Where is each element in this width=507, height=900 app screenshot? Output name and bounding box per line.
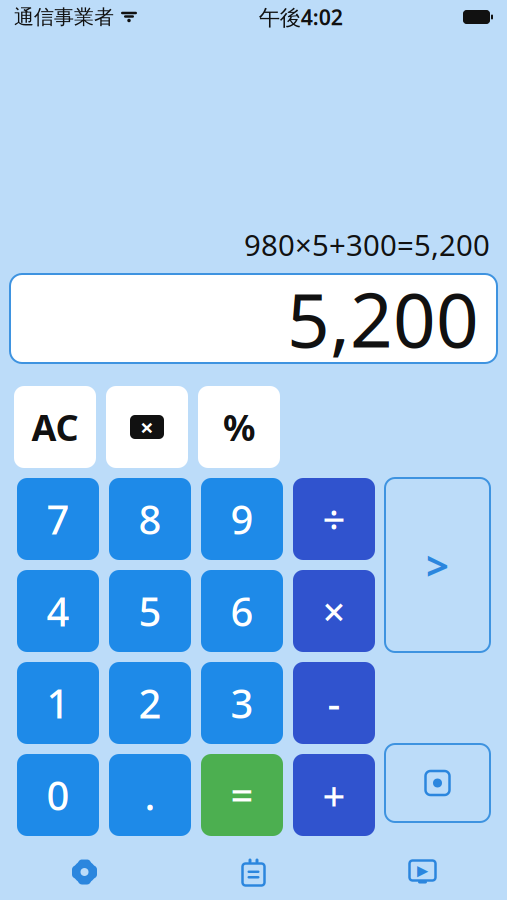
staticText: × <box>322 584 345 637</box>
staticText: ▶ <box>417 862 428 879</box>
button[interactable]: Videos <box>338 844 507 900</box>
staticText: 2 <box>138 676 161 729</box>
button[interactable]: 9 <box>201 478 283 560</box>
staticText: × <box>140 411 154 443</box>
button[interactable]: ÷ <box>293 478 375 560</box>
staticText: 980×5+300=5,200 <box>244 225 490 264</box>
button[interactable]: × <box>293 570 375 652</box>
staticText: - <box>327 676 340 729</box>
button[interactable]: 7 <box>17 478 99 560</box>
staticText: + <box>322 768 345 821</box>
button[interactable]: 0 <box>17 754 99 836</box>
button[interactable]: 4 <box>17 570 99 652</box>
button[interactable]: Backspace <box>106 386 188 468</box>
staticText: 6 <box>230 584 253 637</box>
staticText: 5,200 <box>287 269 479 368</box>
staticText: 通信事業者 <box>14 5 114 29</box>
staticText: = <box>230 768 253 821</box>
staticText: 午後4:02 <box>259 3 343 31</box>
button[interactable]: 8 <box>109 478 191 560</box>
staticText: > <box>426 538 449 591</box>
staticText: 8 <box>138 492 161 545</box>
staticText: 5 <box>138 584 161 637</box>
staticText: 0 <box>46 768 69 821</box>
button[interactable]: - <box>293 662 375 744</box>
button[interactable]: + <box>293 754 375 836</box>
staticText: 1 <box>46 676 69 729</box>
staticText: 4 <box>46 584 69 637</box>
staticText: AC <box>31 403 78 451</box>
staticText: 7 <box>46 492 69 545</box>
button[interactable]: AC <box>14 386 96 468</box>
button[interactable]: . <box>109 754 191 836</box>
button[interactable]: 6 <box>201 570 283 652</box>
button[interactable]: 1 <box>17 662 99 744</box>
button[interactable]: 2 <box>109 662 191 744</box>
staticText: % <box>223 403 255 451</box>
button[interactable]: % <box>198 386 280 468</box>
button[interactable]: 3 <box>201 662 283 744</box>
button[interactable]: History <box>169 844 338 900</box>
button[interactable]: 5 <box>109 570 191 652</box>
staticText: . <box>144 768 155 821</box>
button[interactable]: Next <box>385 478 490 652</box>
button[interactable]: Scan <box>385 744 490 822</box>
staticText: ÷ <box>322 492 345 545</box>
button[interactable]: = <box>201 754 283 836</box>
staticText: 9 <box>230 492 253 545</box>
staticText: 3 <box>230 676 253 729</box>
button[interactable]: Settings <box>0 844 169 900</box>
